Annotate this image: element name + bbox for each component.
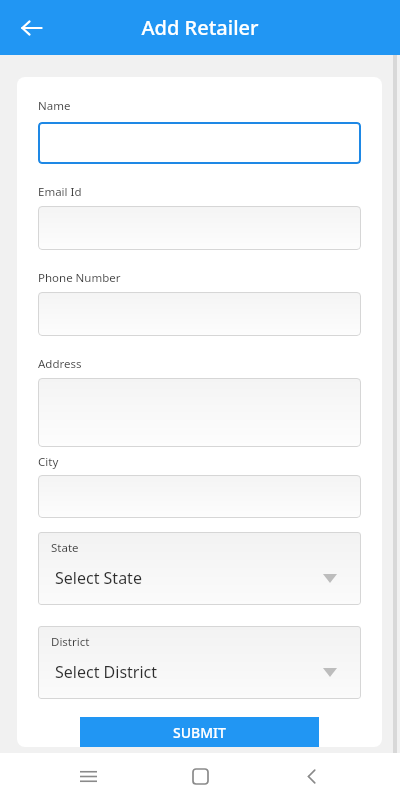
staticText: Add Retailer — [141, 14, 259, 41]
button[interactable]: Back — [288, 753, 336, 800]
staticText: Phone Number — [38, 270, 121, 286]
button[interactable] — [38, 292, 361, 336]
staticText: City — [38, 454, 59, 470]
staticText: District — [51, 634, 90, 650]
staticText: SUBMIT — [173, 723, 226, 742]
button[interactable]: Home — [176, 753, 224, 800]
staticText: Address — [38, 356, 82, 372]
staticText: Email Id — [38, 184, 82, 200]
staticText: Select District — [55, 661, 158, 683]
button[interactable]: State — [38, 532, 361, 605]
button[interactable]: Back — [10, 6, 54, 50]
button[interactable] — [38, 122, 361, 164]
button[interactable] — [38, 206, 361, 250]
button[interactable] — [38, 378, 361, 447]
button[interactable] — [38, 475, 361, 518]
staticText: Name — [38, 98, 71, 114]
button[interactable]: SUBMIT — [80, 717, 319, 747]
button[interactable]: Recent apps — [64, 753, 112, 800]
staticText: Select State — [55, 567, 142, 589]
staticText: State — [51, 540, 79, 556]
button[interactable]: District — [38, 626, 361, 699]
